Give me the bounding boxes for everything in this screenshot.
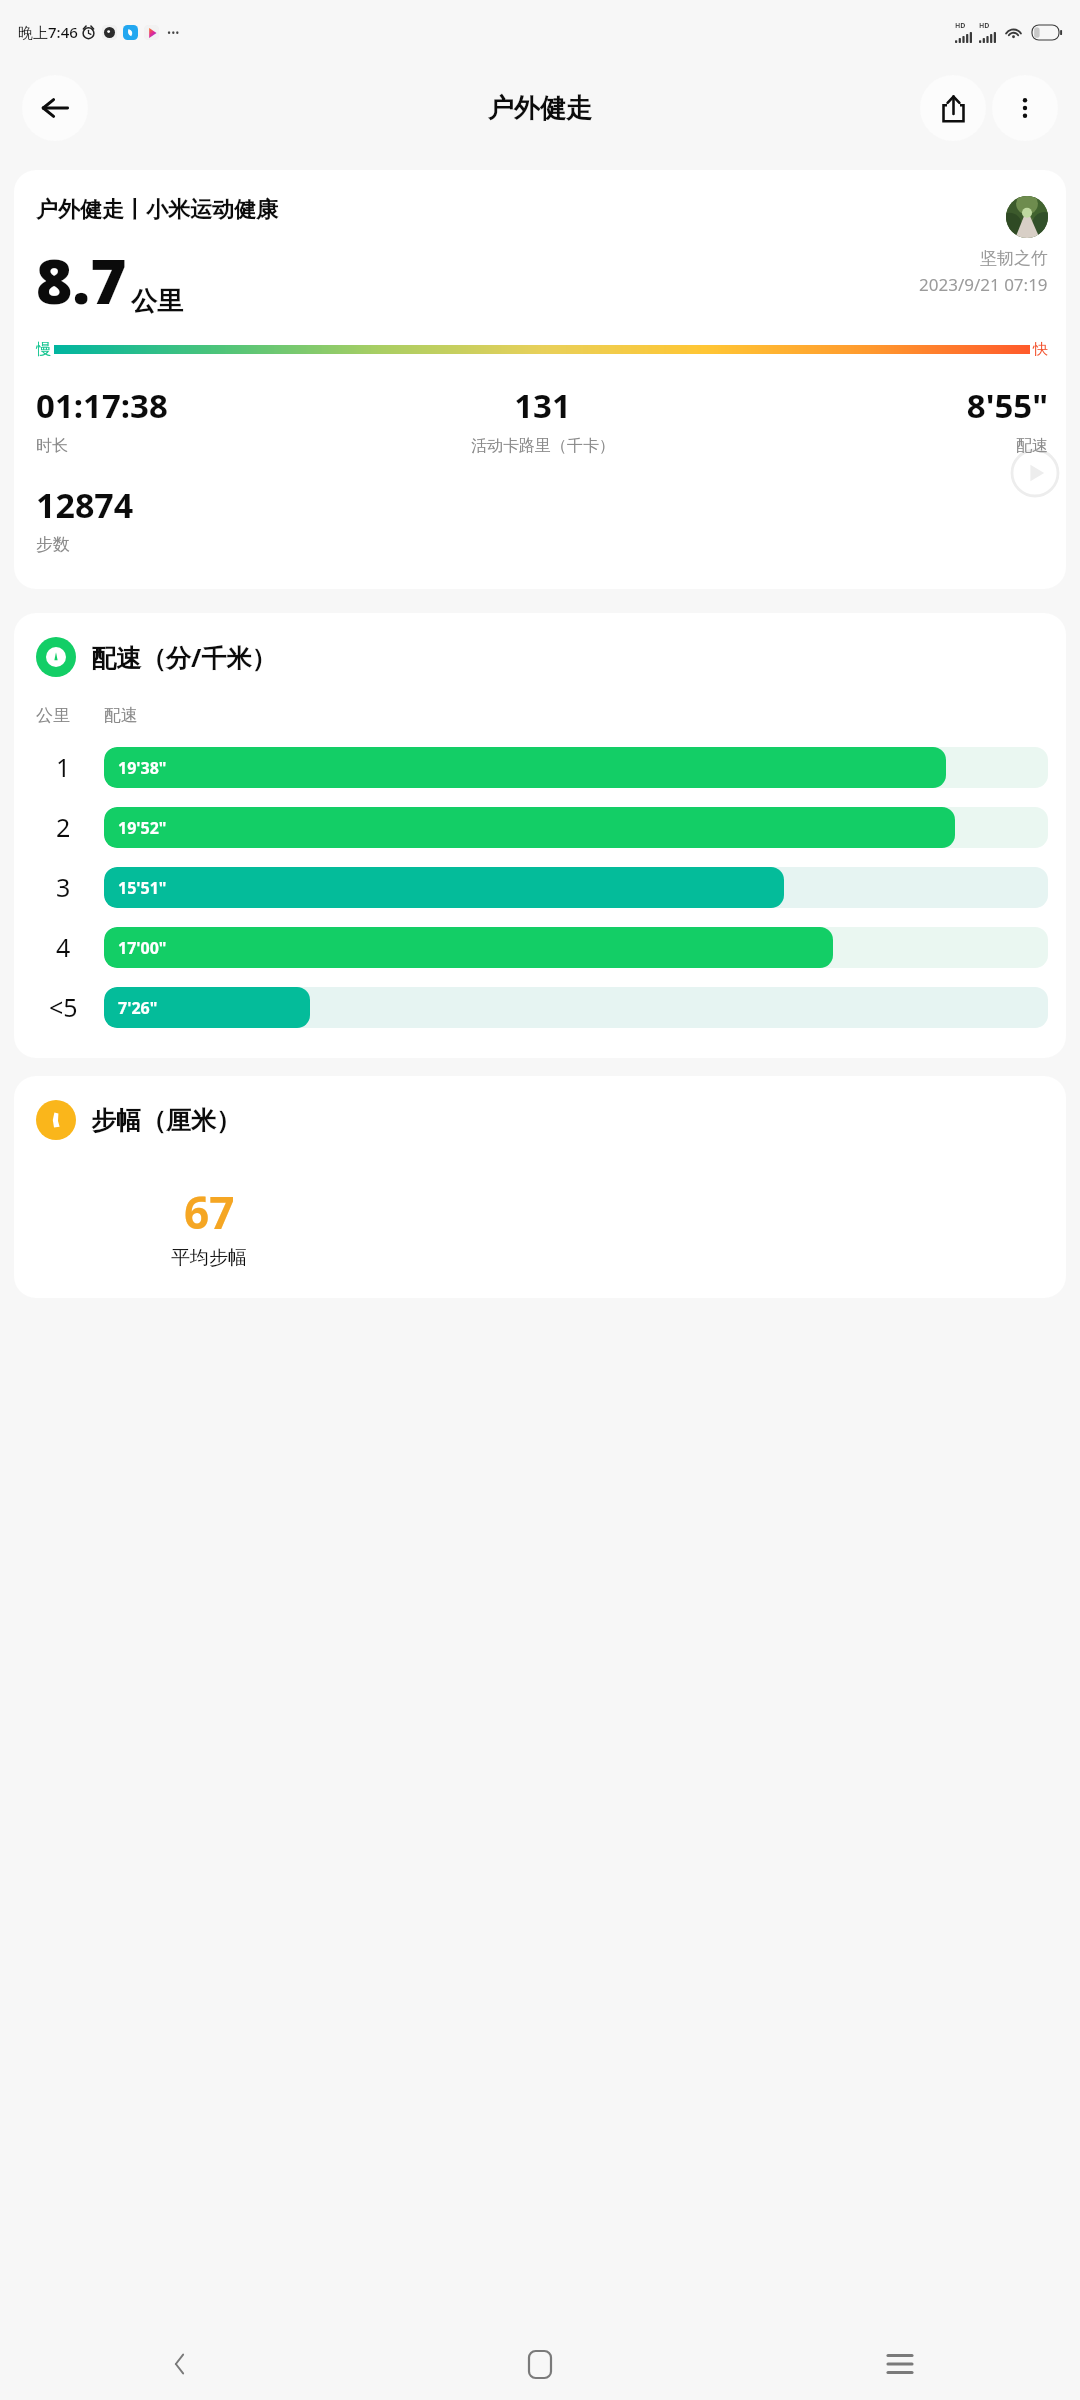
staticText: 2023/9/21 07:19 xyxy=(919,273,1048,296)
staticText: 户外健走 xyxy=(488,92,592,125)
staticText: 01:17:38 xyxy=(36,383,168,428)
staticText: 7'26" xyxy=(118,997,158,1019)
button[interactable]: 分享 xyxy=(920,75,986,141)
staticText: 平均步幅 xyxy=(171,1246,247,1270)
button[interactable]: 配速（分/千米） xyxy=(14,613,1066,1058)
staticText: 晚上7:46 xyxy=(18,22,78,42)
staticText: 19'52" xyxy=(118,817,167,839)
staticText: 公里 xyxy=(131,285,183,318)
button[interactable]: 主页 xyxy=(360,2328,720,2400)
staticText: 快 xyxy=(1033,340,1048,359)
staticText: 户外健走丨小米运动健康 xyxy=(36,196,278,224)
staticText: 坚韧之竹 xyxy=(980,248,1048,269)
staticText: 2 xyxy=(56,810,71,844)
staticText: 活动卡路里（千卡） xyxy=(471,436,615,456)
staticText: 公里 xyxy=(36,705,70,726)
button[interactable]: 更多选项 xyxy=(992,75,1058,141)
staticText: 67 xyxy=(184,1182,235,1242)
staticText: 131 xyxy=(514,383,571,428)
staticText: 8.7 xyxy=(36,238,127,322)
staticText: HD xyxy=(979,21,990,31)
staticText: 配速 xyxy=(1016,436,1048,456)
staticText: 步数 xyxy=(36,534,70,555)
staticText: 15'51" xyxy=(118,877,167,899)
staticText: 4 xyxy=(56,930,71,964)
staticText: 12874 xyxy=(36,482,134,528)
staticText: 时长 xyxy=(36,436,68,456)
button[interactable]: 返回 xyxy=(0,2328,360,2400)
staticText: <5 xyxy=(49,990,78,1024)
staticText: 1 xyxy=(56,750,71,784)
staticText: 3 xyxy=(56,870,71,904)
staticText: HD xyxy=(955,21,966,31)
staticText: 配速（分/千米） xyxy=(91,640,277,674)
staticText: 步幅（厘米） xyxy=(91,1105,241,1136)
button[interactable]: 户外健走丨小米运动健康 xyxy=(14,170,1066,589)
staticText: 配速 xyxy=(104,705,138,726)
staticText: 19'38" xyxy=(118,757,167,779)
staticText: 慢 xyxy=(36,340,51,359)
staticText: 8'55" xyxy=(966,383,1048,428)
staticText: ••• xyxy=(167,25,180,40)
staticText: 17'00" xyxy=(118,937,167,959)
button[interactable]: 返回 xyxy=(22,75,88,141)
button[interactable]: 步幅（厘米） xyxy=(14,1076,1066,1298)
button[interactable]: 最近任务 xyxy=(720,2328,1080,2400)
